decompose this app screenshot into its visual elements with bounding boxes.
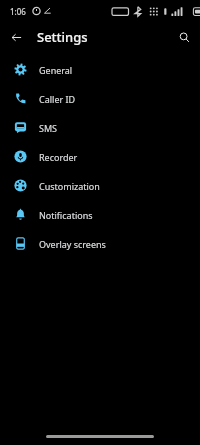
button[interactable]: General: [0, 55, 200, 84]
button[interactable]: Overlay screens: [0, 229, 200, 258]
button[interactable]: Caller ID: [0, 84, 200, 113]
button[interactable]: Back: [7, 28, 25, 46]
staticText: Settings: [37, 28, 88, 46]
button[interactable]: Recorder: [0, 142, 200, 171]
button[interactable]: Customization: [0, 171, 200, 200]
button[interactable]: Search: [175, 28, 193, 46]
button[interactable]: Notifications: [0, 200, 200, 229]
staticText: Overlay screens: [39, 238, 106, 250]
staticText: Caller ID: [39, 93, 76, 105]
staticText: Recorder: [39, 151, 78, 163]
staticText: Customization: [39, 180, 100, 192]
staticText: 1:06: [10, 6, 26, 17]
button[interactable]: SMS: [0, 113, 200, 142]
staticText: General: [39, 64, 73, 76]
staticText: Notifications: [39, 209, 93, 221]
staticText: SMS: [39, 122, 58, 134]
